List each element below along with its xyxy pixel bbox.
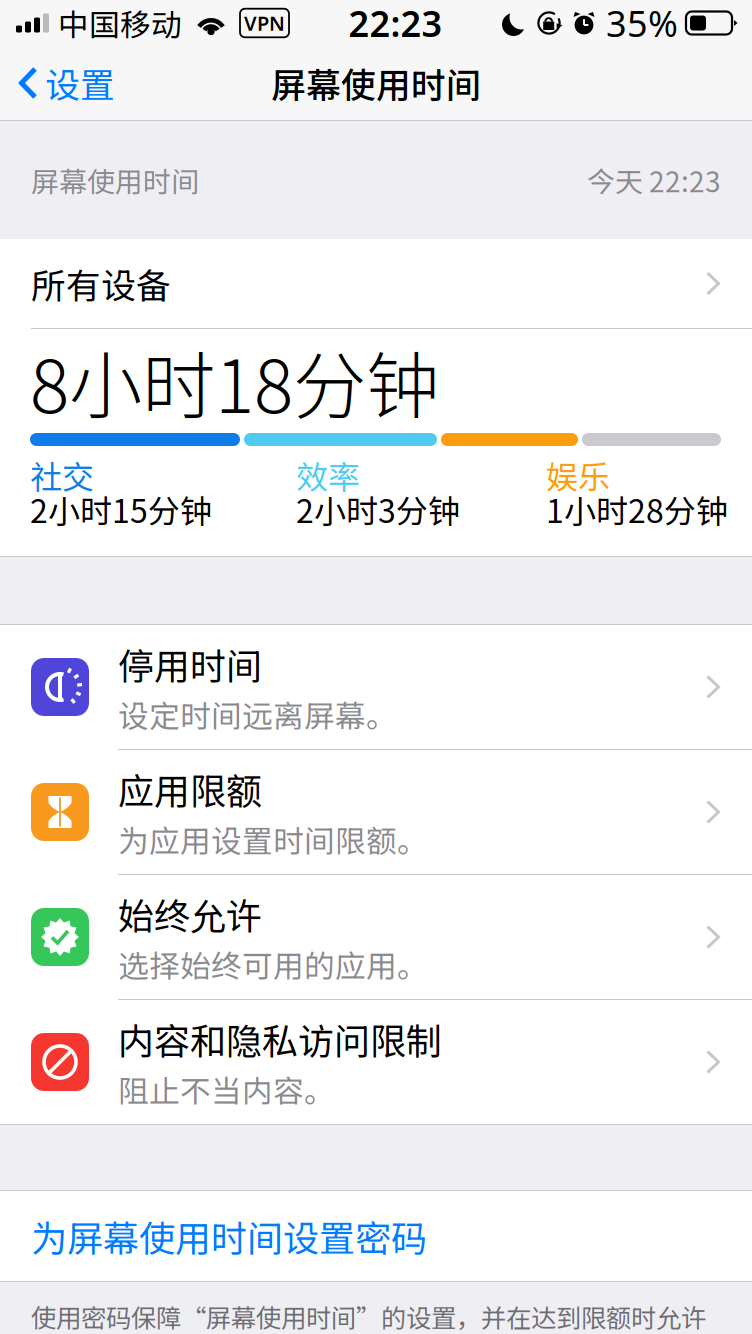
staticText: 内容和隐私访问限制: [118, 1013, 442, 1065]
staticText: 阻止不当内容。: [118, 1067, 335, 1111]
staticText: 屏幕使用时间: [31, 160, 199, 200]
button[interactable]: 所有设备: [0, 239, 752, 328]
button[interactable]: 为屏幕使用时间设置密码: [0, 1191, 752, 1281]
staticText: 社交: [30, 452, 94, 498]
staticText: 8小时18分钟: [30, 328, 439, 434]
button[interactable]: 内容和隐私访问限制: [0, 1000, 752, 1124]
staticText: 中国移动: [58, 1, 182, 45]
staticText: 应用限额: [118, 763, 262, 815]
staticText: 所有设备: [31, 258, 171, 309]
staticText: 选择始终可用的应用。: [118, 942, 428, 986]
staticText: 始终允许: [118, 888, 262, 940]
button[interactable]: 始终允许: [0, 875, 752, 999]
staticText: 效率: [296, 452, 360, 498]
staticText: 设置: [45, 58, 115, 108]
button[interactable]: 停用时间: [0, 625, 752, 749]
staticText: 屏幕使用时间: [271, 58, 481, 108]
staticText: 停用时间: [118, 638, 262, 690]
staticText: 娱乐: [546, 452, 610, 498]
staticText: 1小时28分钟: [546, 486, 728, 532]
staticText: 设定时间远离屏幕。: [118, 692, 397, 736]
staticText: 为应用设置时间限额。: [118, 817, 428, 861]
staticText: 2小时15分钟: [30, 486, 212, 532]
staticText: 为屏幕使用时间设置密码: [31, 1210, 427, 1262]
staticText: 今天 22:23: [587, 160, 721, 200]
staticText: 22:23: [348, 0, 442, 47]
button[interactable]: 应用限额: [0, 750, 752, 874]
staticText: 使用密码保障“屏幕使用时间”的设置，并在达到限额时允许更多的使用时间。: [31, 1298, 706, 1334]
staticText: VPN: [244, 10, 285, 36]
button[interactable]: 设置: [0, 46, 125, 120]
staticText: 2小时3分钟: [296, 486, 460, 532]
staticText: 35%: [606, 0, 678, 47]
